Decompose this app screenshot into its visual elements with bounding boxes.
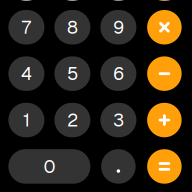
staticText: 7 (21, 15, 31, 39)
button[interactable]: 3 (100, 103, 136, 137)
button[interactable]: 2 (54, 103, 90, 137)
button[interactable]: 9 (100, 10, 136, 44)
button[interactable]: Plus (146, 103, 182, 137)
staticText: 1 (23, 108, 30, 132)
button[interactable]: 1 (8, 103, 44, 137)
staticText: 0 (43, 155, 55, 178)
staticText: 3 (113, 108, 124, 132)
button[interactable]: 6 (100, 56, 136, 91)
button[interactable]: 0 (8, 149, 90, 184)
button[interactable]: Multiply (146, 10, 182, 44)
staticText: 5 (67, 62, 78, 85)
button[interactable]: 4 (8, 56, 44, 91)
staticText: 4 (21, 62, 32, 85)
button[interactable]: Equals (146, 149, 182, 184)
staticText: 8 (67, 15, 78, 39)
staticText: 2 (67, 108, 78, 132)
button[interactable]: Minus (146, 56, 182, 91)
staticText: 9 (113, 15, 124, 39)
button[interactable]: 5 (54, 56, 90, 91)
button[interactable]: 8 (54, 10, 90, 44)
button[interactable]: Decimal point (100, 149, 136, 184)
staticText: 6 (113, 62, 124, 85)
button[interactable]: 7 (8, 10, 44, 44)
